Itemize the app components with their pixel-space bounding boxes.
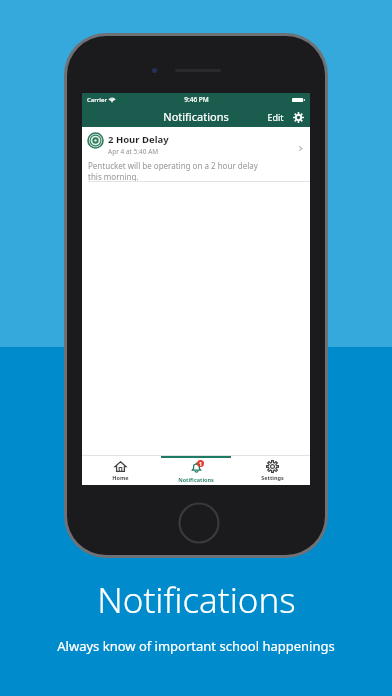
staticText: 2 Hour Delay [108,133,169,146]
staticText: Settings [261,474,284,481]
staticText: Edit [267,111,284,123]
staticText: 9:46 PM [184,95,209,104]
button[interactable]: Edit [265,109,286,125]
staticText: Pentucket will be operating on a 2 hour … [88,160,263,182]
button[interactable]: Settings [291,110,305,124]
staticText: Always know of important school happenin… [57,637,335,655]
staticText: Notifications [163,109,229,124]
button[interactable]: Home [82,456,158,485]
button[interactable]: 1 [158,456,234,485]
button[interactable]: 2 Hour Delay [82,127,310,182]
staticText: Home [112,474,129,481]
staticText: Carrier [87,96,107,104]
staticText: Notifications [178,476,214,483]
staticText: Apr 4 at 5:40 AM [108,147,159,156]
staticText: Notifications [97,576,296,624]
staticText: 1 [199,461,202,467]
button[interactable]: Settings [234,456,310,485]
